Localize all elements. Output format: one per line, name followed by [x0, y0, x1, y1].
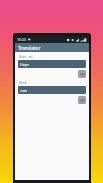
- button[interactable]: Hindi: [18, 81, 86, 86]
- button[interactable]: Hope: [18, 60, 86, 68]
- button[interactable]: Auto - en: [18, 55, 86, 60]
- staticText: Auto - en: [19, 55, 33, 59]
- staticText: Hope: [20, 62, 30, 67]
- staticText: 10:24: [17, 37, 26, 42]
- button[interactable]: Speak: [78, 96, 86, 104]
- staticText: Translator: [18, 45, 41, 51]
- button[interactable]: आशा: [18, 86, 86, 94]
- button[interactable]: Speak: [78, 70, 86, 78]
- staticText: Hindi: [19, 81, 27, 85]
- staticText: आशा: [20, 88, 28, 93]
